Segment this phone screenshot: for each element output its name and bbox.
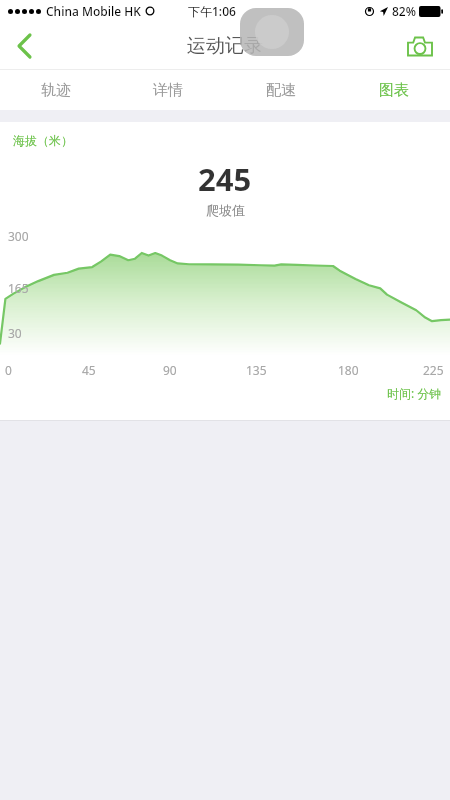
staticText: 海拔（米）: [13, 133, 73, 148]
staticText: China Mobile HK: [46, 3, 141, 19]
staticText: 45: [82, 362, 96, 378]
staticText: 245: [198, 158, 252, 200]
staticText: 30: [8, 325, 22, 341]
staticText: 135: [246, 362, 267, 378]
staticText: 180: [338, 362, 359, 378]
button[interactable]: Back: [0, 22, 48, 70]
staticText: 300: [8, 228, 29, 244]
staticText: 爬坡值: [206, 202, 245, 218]
button[interactable]: 图表: [337, 70, 450, 110]
staticText: 下午1:06: [188, 3, 236, 19]
staticText: 0: [5, 362, 12, 378]
staticText: 165: [8, 280, 29, 296]
staticText: 详情: [153, 81, 183, 100]
staticText: 时间: 分钟: [387, 385, 442, 401]
button[interactable]: 配速: [224, 70, 337, 110]
staticText: 运动记录: [187, 34, 263, 58]
staticText: 配速: [266, 81, 296, 100]
staticText: 图表: [379, 81, 409, 100]
staticText: 轨迹: [41, 81, 71, 100]
button[interactable]: 轨迹: [0, 70, 112, 110]
button[interactable]: 详情: [112, 70, 224, 110]
staticText: 82%: [392, 3, 416, 19]
staticText: 90: [163, 362, 177, 378]
button[interactable]: Camera: [398, 24, 442, 68]
staticText: 225: [423, 362, 444, 378]
